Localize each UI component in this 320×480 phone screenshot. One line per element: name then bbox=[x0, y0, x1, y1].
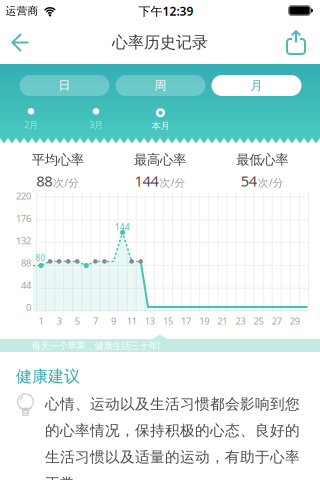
staticText: 144 bbox=[134, 171, 158, 190]
staticText: 3 bbox=[57, 315, 62, 327]
staticText: 19 bbox=[199, 315, 209, 327]
staticText: 周 bbox=[154, 78, 166, 93]
staticText: 176 bbox=[16, 212, 31, 224]
staticText: 44 bbox=[21, 279, 31, 291]
button[interactable]: 周 bbox=[115, 75, 205, 96]
staticText: 9 bbox=[111, 315, 116, 327]
staticText: 17 bbox=[181, 315, 191, 327]
staticText: 88 bbox=[21, 257, 31, 269]
staticText: 运营商 bbox=[5, 4, 38, 17]
staticText: 健康建议 bbox=[16, 367, 80, 386]
staticText: 23 bbox=[235, 315, 245, 327]
staticText: 2月 bbox=[24, 119, 38, 131]
button[interactable]: Back bbox=[5, 27, 35, 57]
staticText: 5 bbox=[75, 315, 80, 327]
staticText: 54 bbox=[241, 171, 257, 190]
staticText: 本月 bbox=[151, 120, 169, 132]
staticText: 3月 bbox=[89, 119, 103, 131]
staticText: 0 bbox=[26, 301, 31, 314]
staticText: 次/分 bbox=[159, 175, 185, 189]
staticText: 心情、运动以及生活习惯都会影响到您 bbox=[45, 395, 300, 413]
button[interactable]: 月 bbox=[211, 75, 301, 96]
staticText: 正常。 bbox=[45, 474, 90, 480]
staticText: 144 bbox=[115, 222, 130, 232]
staticText: 15 bbox=[163, 315, 173, 327]
button[interactable]: 3月 bbox=[89, 108, 103, 131]
staticText: 每天一个苹果，健康生活三十年! bbox=[31, 339, 160, 352]
staticText: 生活习惯以及适量的运动，有助于心率 bbox=[45, 448, 300, 466]
button[interactable]: Share bbox=[283, 28, 309, 56]
staticText: 220 bbox=[16, 190, 31, 202]
staticText: 最高心率 bbox=[134, 152, 186, 168]
staticText: 日 bbox=[58, 78, 70, 93]
staticText: 132 bbox=[16, 234, 31, 247]
staticText: 下午12:39 bbox=[138, 3, 193, 19]
staticText: 最低心率 bbox=[236, 152, 288, 168]
staticText: 次/分 bbox=[258, 175, 284, 189]
staticText: 27 bbox=[272, 315, 282, 327]
staticText: 11 bbox=[127, 315, 137, 327]
staticText: 心率历史记录 bbox=[112, 33, 208, 52]
staticText: 80 bbox=[35, 253, 45, 263]
staticText: 1 bbox=[38, 315, 43, 327]
staticText: 月 bbox=[250, 78, 262, 93]
staticText: 平均心率 bbox=[32, 152, 84, 168]
staticText: 25 bbox=[254, 315, 264, 327]
staticText: 的心率情况，保持积极的心态、良好的 bbox=[45, 421, 300, 439]
staticText: 29 bbox=[290, 315, 300, 327]
button[interactable]: 本月 bbox=[151, 108, 169, 132]
staticText: 21 bbox=[217, 315, 227, 327]
button[interactable]: 2月 bbox=[24, 108, 38, 131]
button[interactable]: 日 bbox=[19, 75, 109, 96]
staticText: 次/分 bbox=[53, 175, 79, 189]
staticText: 13 bbox=[145, 315, 155, 327]
staticText: 88 bbox=[36, 171, 52, 190]
staticText: 7 bbox=[93, 315, 98, 327]
